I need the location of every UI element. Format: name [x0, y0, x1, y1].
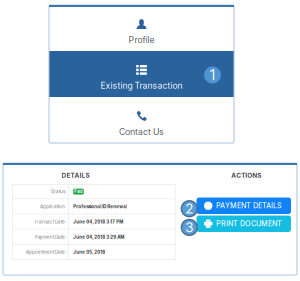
- staticText: ACTIONS: [231, 171, 261, 179]
- button[interactable]: PRINT DOCUMENT: [196, 215, 291, 232]
- button[interactable]: Contact Us: [49, 97, 234, 143]
- button[interactable]: Profile: [49, 5, 234, 51]
- staticText: June 05, 2018: [73, 249, 105, 255]
- staticText: Appointment Date:: [26, 249, 66, 255]
- button[interactable]: Existing Transaction: [49, 51, 234, 97]
- staticText: PAYMENT DETAILS: [216, 201, 282, 210]
- staticText: DETAILS: [62, 171, 90, 179]
- staticText: Status:: [51, 189, 66, 194]
- button[interactable]: PAYMENT DETAILS: [196, 197, 291, 214]
- staticText: Profile: [128, 34, 154, 45]
- staticText: 1: [209, 66, 215, 84]
- staticText: Existing Transaction: [100, 80, 182, 91]
- staticText: Paid: [74, 189, 83, 194]
- staticText: 2: [185, 200, 193, 217]
- staticText: 3: [185, 219, 193, 235]
- staticText: Application:: [40, 204, 66, 209]
- staticText: Contact Us: [119, 126, 164, 137]
- staticText: Transact Date:: [34, 219, 66, 225]
- staticText: June 04, 2018 3:17 PM: [73, 219, 123, 224]
- staticText: June 04, 2018 3:29 AM: [73, 234, 124, 240]
- staticText: PRINT DOCUMENT: [216, 219, 282, 228]
- staticText: Professional ID Renewal: [73, 204, 127, 209]
- staticText: Payment Date:: [35, 234, 66, 240]
